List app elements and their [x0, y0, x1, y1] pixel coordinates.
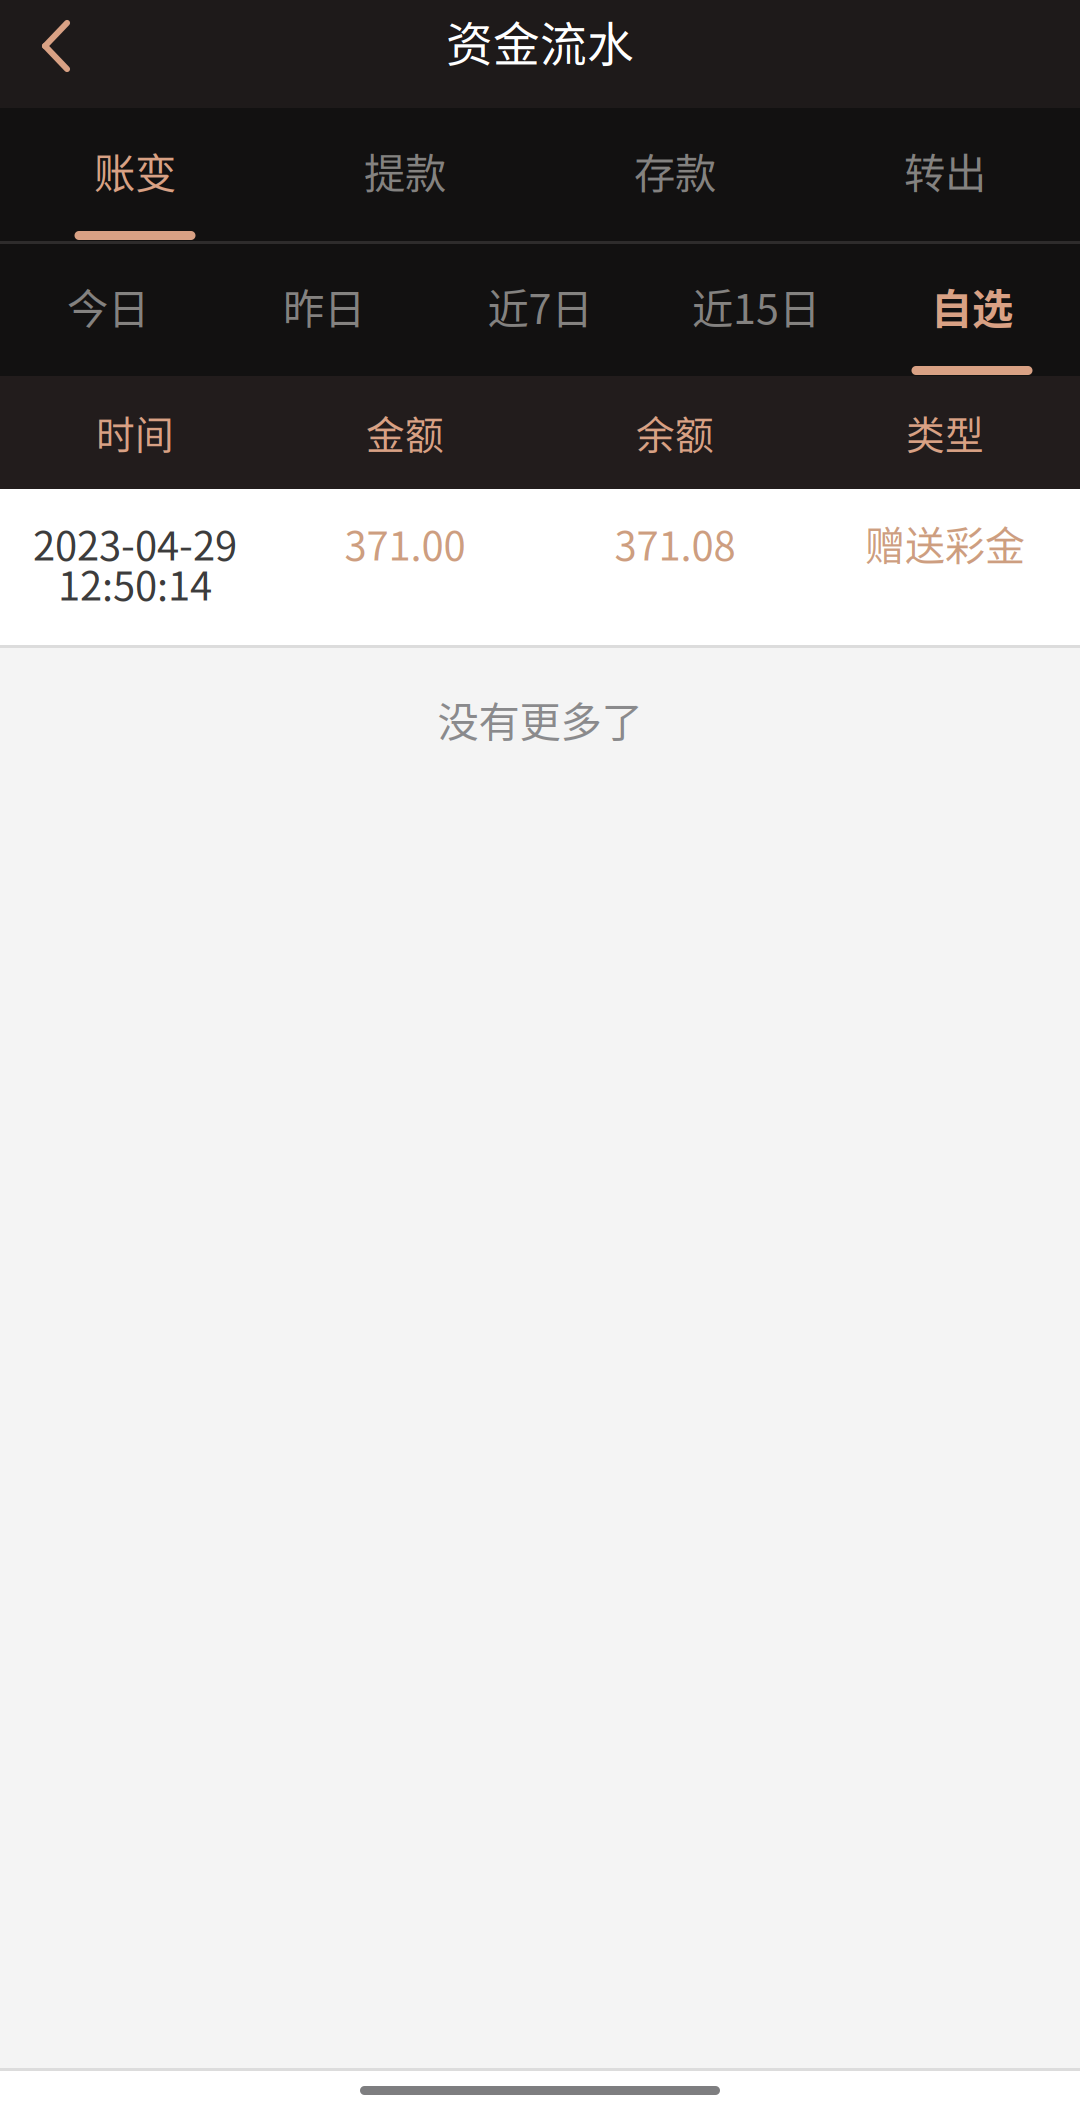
staticText: 没有更多了 [437, 689, 642, 749]
button[interactable]: 提款 [270, 108, 540, 241]
staticText: 存款 [634, 141, 716, 200]
button[interactable]: Back [0, 0, 133, 108]
staticText: 金额 [366, 404, 444, 460]
button[interactable]: 昨日 [216, 244, 432, 376]
staticText: 今日 [67, 276, 149, 336]
staticText: 371.00 [344, 514, 465, 572]
staticText: 余额 [636, 404, 714, 460]
staticText: 近7日 [487, 276, 592, 336]
staticText: 转出 [904, 141, 986, 200]
staticText: 时间 [96, 404, 174, 460]
button[interactable]: 账变 [0, 108, 270, 241]
button[interactable]: 今日 [0, 244, 216, 376]
staticText: 昨日 [283, 276, 365, 336]
button[interactable]: 自选 [864, 244, 1080, 376]
button[interactable]: 近7日 [432, 244, 648, 376]
staticText: 近15日 [692, 276, 820, 336]
staticText: 赠送彩金 [865, 514, 1025, 572]
button[interactable]: 近15日 [648, 244, 864, 376]
staticText: 371.08 [614, 514, 735, 572]
button[interactable]: 转出 [810, 108, 1080, 241]
button[interactable]: 2023-04-29 [0, 489, 1080, 645]
staticText: 类型 [906, 404, 984, 460]
staticText: 12:50:14 [58, 554, 212, 612]
staticText: 账变 [94, 141, 176, 200]
staticText: 自选 [931, 276, 1013, 336]
staticText: 资金流水 [446, 7, 634, 75]
staticText: 提款 [364, 141, 446, 200]
staticText: 2023-04-29 [33, 514, 237, 572]
button[interactable]: 存款 [540, 108, 810, 241]
